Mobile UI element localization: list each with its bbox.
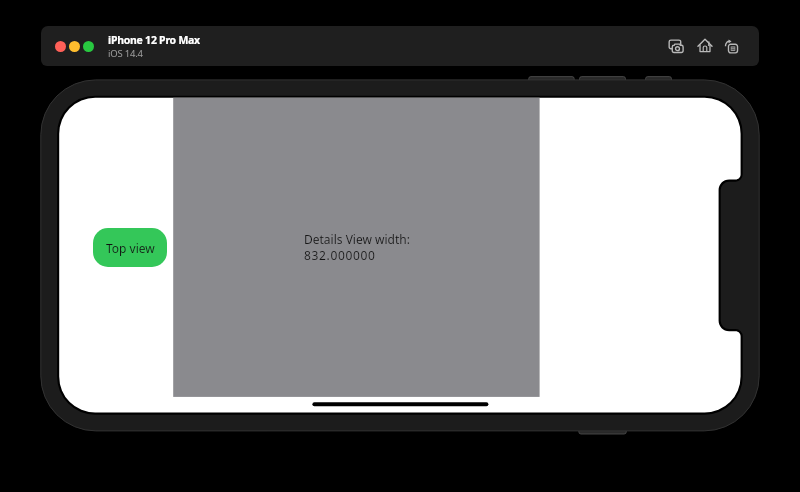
button[interactable]: Home [692, 33, 718, 59]
button[interactable]: Rotate device [720, 33, 746, 59]
staticText: iOS 14.4 [108, 47, 143, 60]
staticText: Top view [106, 240, 155, 256]
staticText: 832.000000 [304, 247, 376, 263]
button[interactable]: Top view [93, 228, 167, 267]
button[interactable]: Take screenshot [663, 34, 689, 60]
staticText: iPhone 12 Pro Max [108, 33, 200, 47]
button[interactable]: Maximize window [83, 41, 94, 52]
staticText: Details View width: [304, 231, 410, 247]
button[interactable]: Close window [55, 41, 66, 52]
button[interactable]: Minimize window [69, 41, 80, 52]
